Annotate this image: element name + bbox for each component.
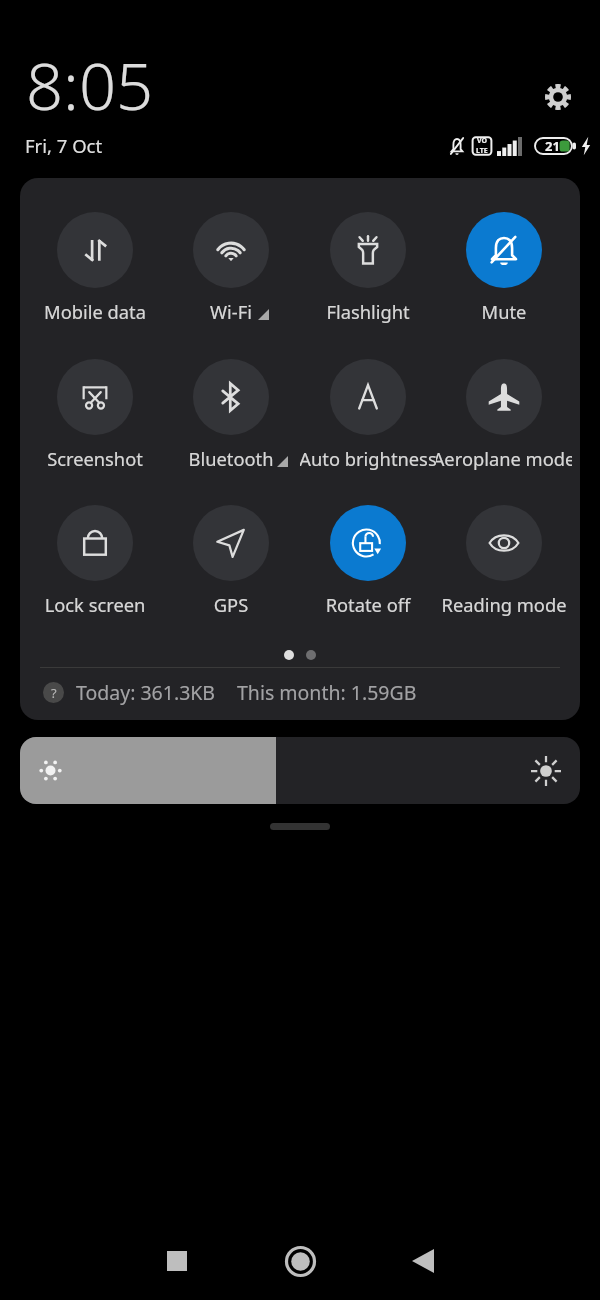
staticText: This month: 1.59GB	[237, 679, 417, 706]
staticText: 8:05	[26, 41, 154, 130]
staticText: Wi-Fi	[163, 299, 299, 323]
staticText: Today: 361.3KB	[76, 679, 216, 706]
staticText: Aeroplane mode	[436, 446, 572, 470]
staticText: Mobile data	[27, 299, 163, 323]
staticText: Bluetooth	[163, 446, 299, 470]
button[interactable]: GPS	[163, 505, 299, 616]
button[interactable]: Data usage info	[43, 682, 64, 703]
staticText: VO	[477, 136, 488, 146]
button[interactable]: Lock screen	[27, 505, 163, 616]
button[interactable]: Settings	[541, 80, 575, 114]
button[interactable]: Mobile data	[27, 212, 163, 323]
button[interactable]: Recents	[146, 1230, 208, 1292]
staticText: Fri, 7 Oct	[25, 133, 103, 158]
staticText: Screenshot	[27, 446, 163, 470]
button[interactable]: Brightness	[20, 737, 580, 804]
staticText: Rotate off	[300, 592, 436, 616]
button[interactable]: Mute	[436, 212, 572, 323]
staticText: 21	[545, 137, 560, 155]
staticText: Mute	[436, 299, 572, 323]
staticText: Flashlight	[300, 299, 436, 323]
button[interactable]: Screenshot	[27, 359, 163, 470]
button[interactable]: Wi-Fi	[163, 212, 299, 323]
staticText: Lock screen	[27, 592, 163, 616]
button[interactable]: Reading mode	[436, 505, 572, 616]
button[interactable]: Back	[392, 1230, 454, 1292]
button[interactable]: Auto brightness	[300, 359, 436, 470]
button[interactable]: Flashlight	[300, 212, 436, 323]
staticText: Reading mode	[436, 592, 572, 616]
staticText: GPS	[163, 592, 299, 616]
button[interactable]: Aeroplane mode	[436, 359, 572, 470]
button[interactable]: Bluetooth	[163, 359, 299, 470]
staticText: ?	[51, 684, 57, 702]
staticText: LTE	[476, 146, 488, 156]
button[interactable]: Rotate off	[300, 505, 436, 616]
staticText: Auto brightness	[300, 446, 436, 470]
button[interactable]: Home	[269, 1230, 331, 1292]
